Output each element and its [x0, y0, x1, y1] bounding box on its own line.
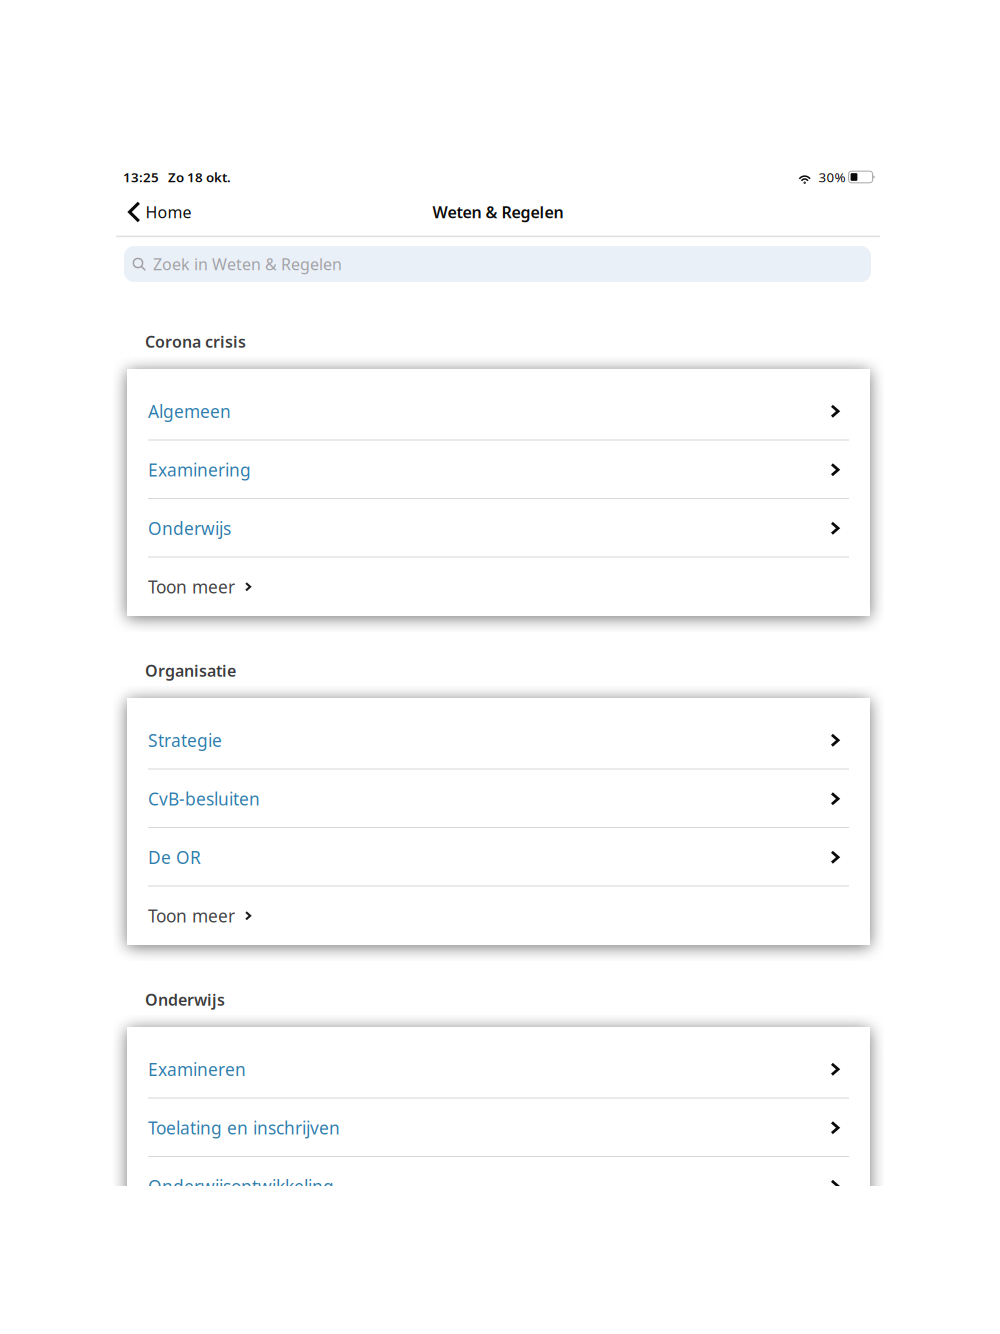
staticText: CvB-besluiten: [148, 787, 260, 810]
button[interactable]: CvB-besluiten: [127, 769, 870, 828]
button[interactable]: Zoek in Weten & Regelen: [124, 246, 871, 282]
staticText: Toon meer: [148, 575, 235, 598]
button[interactable]: Home: [122, 195, 272, 229]
staticText: Examinering: [148, 458, 251, 481]
button[interactable]: Toelating en inschrijven: [127, 1098, 870, 1157]
staticText: 13:25: [123, 168, 159, 186]
staticText: Zoek in Weten & Regelen: [153, 253, 342, 275]
staticText: De OR: [148, 846, 201, 869]
staticText: Toelating en inschrijven: [148, 1116, 340, 1139]
button[interactable]: Strategie: [127, 711, 870, 769]
staticText: 30%: [819, 168, 846, 186]
button[interactable]: Onderwijs: [127, 499, 870, 557]
button[interactable]: Algemeen: [127, 382, 870, 440]
button[interactable]: Examineren: [127, 1040, 870, 1098]
staticText: Onderwijs: [148, 517, 231, 540]
staticText: Home: [145, 201, 191, 223]
staticText: Weten & Regelen: [432, 201, 563, 223]
staticText: Examineren: [148, 1058, 246, 1081]
staticText: Strategie: [148, 729, 222, 752]
staticText: Zo 18 okt.: [168, 168, 231, 186]
staticText: Onderwijs: [145, 989, 225, 1010]
button[interactable]: Onderwijsontwikkeling: [127, 1157, 870, 1215]
staticText: Onderwijsontwikkeling: [148, 1175, 334, 1198]
staticText: Toon meer: [148, 904, 235, 927]
button[interactable]: Examinering: [127, 440, 870, 499]
staticText: Organisatie: [145, 660, 236, 681]
staticText: Corona crisis: [145, 331, 246, 352]
button[interactable]: Toon meer: [127, 557, 870, 616]
button[interactable]: Toon meer: [127, 886, 870, 945]
button[interactable]: De OR: [127, 828, 870, 886]
staticText: Algemeen: [148, 400, 231, 423]
